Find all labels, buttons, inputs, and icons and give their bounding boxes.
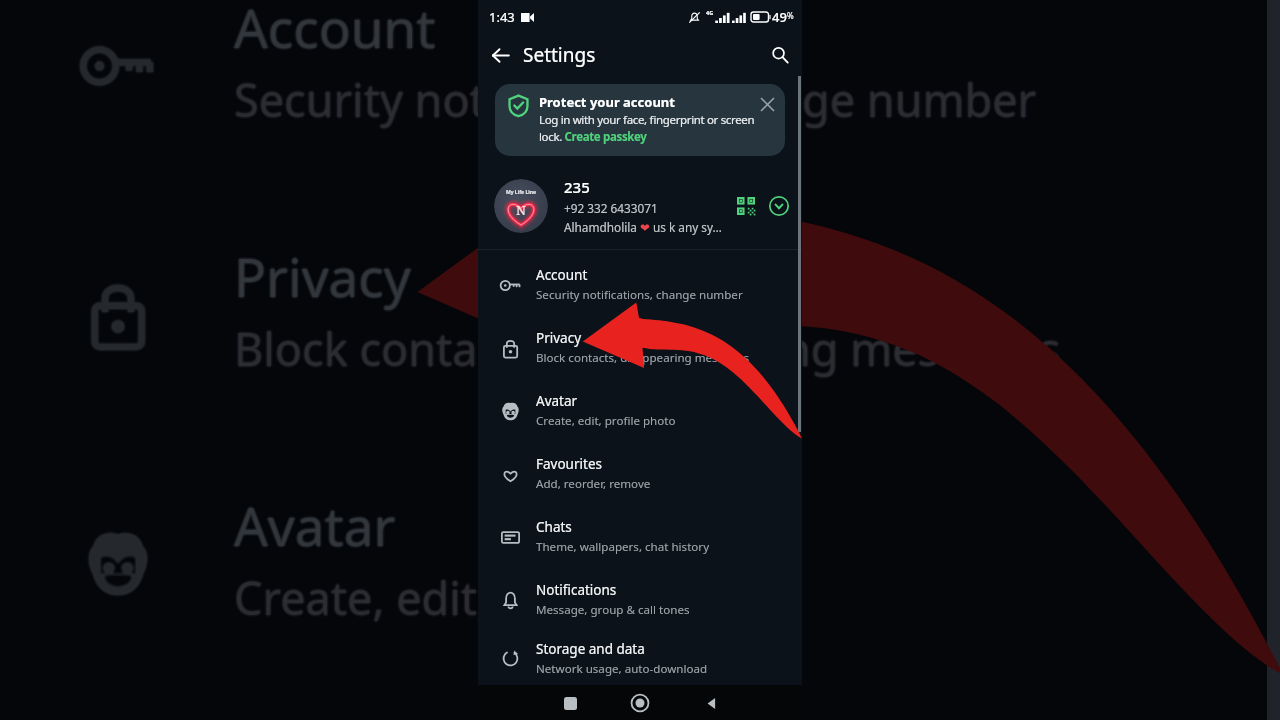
staticText: Block contacts, disappearing messages — [234, 318, 1061, 379]
staticText: Account — [235, 0, 437, 64]
staticText: Storage and data — [536, 640, 645, 658]
staticText: Add, reorder, remove — [536, 476, 651, 492]
staticText: Account — [234, 0, 436, 65]
staticText: Create, edit, profile photo — [234, 567, 776, 628]
button[interactable]: Dismiss — [756, 93, 778, 115]
staticText: 4G — [706, 9, 714, 16]
staticText: 235 — [564, 177, 590, 197]
staticText: Account — [233, 0, 435, 64]
staticText: Create, edit, profile photo — [234, 565, 776, 626]
button[interactable]: Back — [484, 39, 516, 71]
staticText: Avatar — [236, 489, 398, 561]
button[interactable]: Account — [478, 253, 802, 316]
button[interactable]: Storage and data — [478, 631, 802, 685]
staticText: Theme, wallpapers, chat history — [536, 539, 710, 555]
staticText: Account — [233, 0, 435, 62]
button[interactable]: Chats — [478, 505, 802, 568]
staticText: Privacy — [233, 241, 410, 313]
staticText: Protect your account — [539, 93, 675, 111]
staticText: Chats — [536, 518, 572, 536]
staticText: Privacy — [234, 238, 411, 310]
staticText: 49 — [772, 8, 787, 26]
staticText: Favourites — [536, 455, 602, 473]
staticText: Privacy — [235, 241, 412, 313]
staticText: Log in with your face, fingerprint or sc… — [539, 112, 756, 145]
staticText: Security notifications, change number — [235, 68, 1038, 129]
staticText: Settings — [523, 42, 596, 68]
staticText: Block contacts, disappearing messages — [233, 319, 1060, 380]
staticText: Block contacts, disappearing messages — [235, 319, 1062, 380]
staticText: Security notifications, change number — [232, 69, 1035, 130]
staticText: Account — [235, 0, 437, 62]
button[interactable]: QR code — [731, 191, 761, 221]
button[interactable]: Privacy — [478, 316, 802, 379]
staticText: Avatar — [233, 488, 395, 560]
staticText: Security notifications, change number — [233, 70, 1036, 131]
staticText: Create, edit, profile photo — [536, 413, 676, 429]
button[interactable]: Switch account — [764, 191, 794, 221]
staticText: Avatar — [536, 392, 578, 410]
staticText: Block contacts, disappearing messages — [232, 318, 1059, 379]
staticText: Account — [234, 0, 436, 61]
staticText: Security notifications, change number — [234, 69, 1037, 130]
staticText: Create, edit, profile photo — [233, 568, 775, 629]
staticText: Avatar — [235, 488, 397, 560]
staticText: Notifications — [536, 581, 617, 599]
staticText: 1:43 — [489, 8, 515, 26]
staticText: Privacy — [235, 239, 412, 311]
staticText: Security notifications, change number — [234, 67, 1037, 128]
staticText: Security notifications, change number — [234, 71, 1037, 132]
button[interactable]: Search — [764, 39, 796, 71]
button[interactable]: Protect your account — [495, 84, 785, 156]
staticText: % — [787, 10, 794, 21]
staticText: Avatar — [234, 489, 396, 561]
button[interactable]: Avatar — [478, 379, 802, 442]
staticText: Message, group & call tones — [536, 602, 690, 618]
button[interactable]: My Life Line — [478, 177, 802, 235]
staticText: Avatar — [233, 490, 395, 562]
staticText: Security notifications, change number — [235, 70, 1038, 131]
button[interactable]: Notifications — [478, 568, 802, 631]
staticText: My Life Line — [506, 189, 536, 196]
staticText: Account — [234, 0, 436, 63]
button[interactable]: Favourites — [478, 442, 802, 505]
button[interactable]: Back — [693, 685, 729, 720]
staticText: Block contacts, disappearing messages — [236, 318, 1063, 379]
staticText: Account — [536, 266, 588, 284]
staticText: Block contacts, disappearing messages — [234, 316, 1061, 377]
staticText: Avatar — [234, 491, 396, 563]
button[interactable]: Recent apps — [552, 685, 588, 720]
staticText: Create, edit, profile photo — [234, 569, 776, 630]
staticText: Block contacts, disappearing messages — [536, 350, 749, 366]
staticText: Network usage, auto-download — [536, 661, 708, 677]
staticText: Privacy — [536, 329, 582, 347]
staticText: Privacy — [236, 240, 413, 312]
staticText: Security notifications, change number — [536, 287, 743, 303]
staticText: Privacy — [232, 240, 409, 312]
staticText: Alhamdholila ❤ us k any sy… — [564, 219, 722, 235]
staticText: +92 332 6433071 — [564, 200, 658, 216]
staticText: Create, edit, profile photo — [232, 567, 774, 628]
staticText: Avatar — [234, 487, 396, 559]
staticText: Security notifications, change number — [233, 68, 1036, 129]
staticText: Create, edit, profile photo — [236, 567, 778, 628]
staticText: Privacy — [234, 242, 411, 314]
staticText: Block contacts, disappearing messages — [235, 317, 1062, 378]
staticText: Create, edit, profile photo — [235, 568, 777, 629]
staticText: N — [516, 201, 526, 219]
staticText: Avatar — [232, 489, 394, 561]
staticText: Privacy — [234, 240, 411, 312]
staticText: Account — [232, 0, 434, 63]
staticText: Security notifications, change number — [236, 69, 1039, 130]
staticText: Create, edit, profile photo — [233, 566, 775, 627]
staticText: Create, edit, profile photo — [235, 566, 777, 627]
staticText: Account — [236, 0, 438, 63]
button[interactable]: Home — [622, 685, 658, 720]
staticText: Block contacts, disappearing messages — [233, 317, 1060, 378]
staticText: Block contacts, disappearing messages — [234, 320, 1061, 381]
staticText: Privacy — [233, 239, 410, 311]
staticText: Avatar — [235, 490, 397, 562]
